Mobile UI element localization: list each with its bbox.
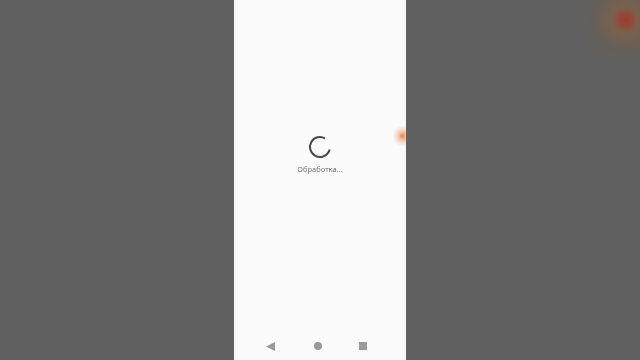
button[interactable]: Recent apps bbox=[349, 332, 377, 360]
staticText: Обработка... bbox=[234, 164, 406, 174]
button[interactable]: Home bbox=[304, 332, 332, 360]
button[interactable]: Back bbox=[256, 332, 284, 360]
